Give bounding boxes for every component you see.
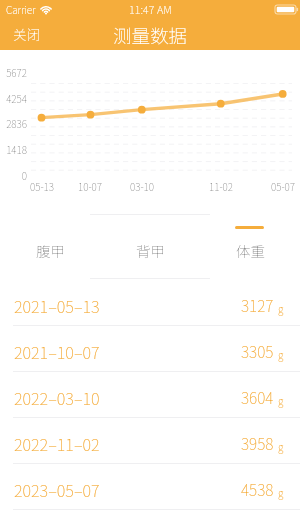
- staticText: 10-07: [68, 179, 112, 193]
- staticText: 4538: [241, 478, 274, 500]
- staticText: 2022–11–02: [14, 432, 100, 456]
- staticText: 03-10: [120, 179, 164, 193]
- staticText: 3305: [241, 340, 274, 362]
- staticText: 5672: [0, 65, 27, 79]
- staticText: 2022–03–10: [14, 386, 100, 410]
- button[interactable]: 背甲: [100, 205, 200, 280]
- staticText: 11-02: [199, 179, 243, 193]
- staticText: 0: [0, 168, 27, 182]
- button[interactable]: 2022–03–10: [0, 372, 300, 417]
- button[interactable]: 关闭: [0, 20, 54, 50]
- staticText: 2836: [0, 116, 27, 130]
- button[interactable]: 腹甲: [0, 205, 100, 280]
- staticText: g: [278, 301, 284, 315]
- staticText: 05-07: [261, 179, 300, 193]
- staticText: 3604: [241, 386, 274, 408]
- button[interactable]: 2021–05–13: [0, 280, 300, 325]
- button[interactable]: 2022–11–02: [0, 418, 300, 463]
- staticText: 腹甲: [36, 240, 65, 261]
- staticText: g: [278, 439, 284, 453]
- staticText: 体重: [236, 240, 265, 261]
- staticText: 关闭: [13, 24, 41, 44]
- staticText: g: [278, 347, 284, 361]
- staticText: 11:47 AM: [129, 1, 172, 17]
- button[interactable]: 体重: [200, 205, 300, 280]
- staticText: g: [278, 485, 284, 499]
- staticText: Carrier: [6, 2, 36, 16]
- staticText: 05-13: [20, 179, 64, 193]
- staticText: 4254: [0, 91, 27, 105]
- staticText: 2021–05–13: [14, 294, 100, 318]
- other: Wi-Fi signal: [39, 4, 53, 14]
- staticText: g: [278, 393, 284, 407]
- staticText: 2021–10–07: [14, 340, 100, 364]
- other: Battery: [275, 5, 296, 14]
- staticText: 3958: [241, 432, 274, 454]
- staticText: 1418: [0, 142, 27, 156]
- button[interactable]: 2021–10–07: [0, 326, 300, 371]
- button[interactable]: 2023–05–07: [0, 464, 300, 509]
- staticText: 背甲: [136, 240, 165, 261]
- staticText: 2023–05–07: [14, 478, 100, 502]
- staticText: 测量数据: [113, 22, 188, 49]
- staticText: 3127: [241, 294, 274, 316]
